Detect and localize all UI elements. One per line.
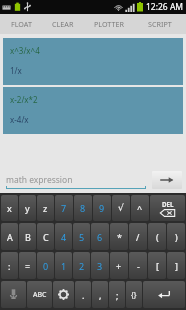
- staticText: /: [136, 231, 140, 243]
- staticText: ,: [99, 289, 102, 301]
- button[interactable]: √: [112, 195, 130, 221]
- staticText: 3: [97, 260, 103, 272]
- button[interactable]: z: [37, 195, 54, 221]
- button[interactable]: C: [37, 223, 54, 250]
- staticText: A: [7, 231, 13, 243]
- staticText: 0: [43, 260, 49, 272]
- button[interactable]: Voice input: [1, 281, 26, 308]
- staticText: y: [25, 202, 30, 214]
- staticText: √: [118, 203, 124, 213]
- button[interactable]: -: [129, 252, 147, 279]
- staticText: 7: [61, 202, 67, 214]
- button[interactable]: [: [148, 252, 166, 279]
- staticText: 5: [79, 231, 85, 243]
- staticText: DEL: [162, 200, 174, 208]
- button[interactable]: *: [110, 223, 128, 250]
- button[interactable]: Submit expression: [152, 171, 182, 189]
- staticText: .: [82, 289, 85, 301]
- button[interactable]: :: [1, 252, 18, 279]
- button[interactable]: x-2/x*2: [3, 87, 183, 134]
- staticText: :: [8, 260, 11, 272]
- staticText: ABC: [33, 290, 47, 300]
- staticText: (: [156, 231, 159, 243]
- staticText: [: [156, 260, 159, 272]
- staticText: x-4/x: [10, 114, 29, 125]
- button[interactable]: x^3/x^4: [3, 38, 183, 85]
- staticText: 1/x: [10, 65, 22, 76]
- button[interactable]: y: [19, 195, 36, 221]
- button[interactable]: B: [19, 223, 36, 250]
- button[interactable]: (: [148, 223, 166, 250]
- button[interactable]: /: [129, 223, 147, 250]
- staticText: 12:26 AM: [146, 1, 184, 13]
- button[interactable]: 9: [93, 195, 111, 221]
- button[interactable]: 2: [73, 252, 90, 279]
- button[interactable]: 3: [91, 252, 109, 279]
- button[interactable]: x: [1, 195, 18, 221]
- staticText: 2: [79, 260, 85, 272]
- staticText: 4: [61, 231, 67, 243]
- staticText: ): [175, 231, 178, 243]
- staticText: x: [7, 202, 12, 214]
- button[interactable]: 4: [55, 223, 72, 250]
- staticText: B: [25, 231, 31, 243]
- staticText: C: [43, 231, 49, 243]
- button[interactable]: ]: [167, 252, 185, 279]
- button[interactable]: ,: [92, 281, 108, 308]
- button[interactable]: Keyboard settings: [53, 281, 74, 308]
- button[interactable]: {}: [126, 281, 142, 308]
- button[interactable]: CLEAR: [42, 14, 84, 34]
- button[interactable]: 8: [74, 195, 92, 221]
- button[interactable]: A: [1, 223, 18, 250]
- staticText: ;: [116, 289, 119, 301]
- staticText: CLEAR: [52, 19, 74, 29]
- staticText: ^: [137, 202, 143, 214]
- button[interactable]: ): [167, 223, 185, 250]
- staticText: 8: [80, 202, 86, 214]
- staticText: ]: [175, 260, 178, 272]
- staticText: *: [117, 231, 122, 243]
- button[interactable]: +: [110, 252, 128, 279]
- button[interactable]: PLOTTER: [84, 14, 134, 34]
- staticText: 1: [61, 260, 67, 272]
- button[interactable]: 5: [73, 223, 90, 250]
- staticText: x-2/x*2: [10, 94, 38, 105]
- button[interactable]: ^: [131, 195, 149, 221]
- staticText: math expression: [6, 174, 73, 186]
- button[interactable]: =: [19, 252, 36, 279]
- button[interactable]: 7: [55, 195, 73, 221]
- button[interactable]: .: [75, 281, 91, 308]
- button[interactable]: Enter: [143, 281, 185, 308]
- button[interactable]: SCRIPT: [134, 14, 186, 34]
- button[interactable]: Delete: [150, 195, 185, 221]
- button[interactable]: 1: [55, 252, 72, 279]
- staticText: +: [116, 260, 122, 272]
- staticText: FLOAT: [11, 19, 32, 29]
- staticText: {}: [131, 290, 137, 300]
- button[interactable]: ;: [109, 281, 125, 308]
- button[interactable]: FLOAT: [0, 14, 42, 34]
- button[interactable]: ABC: [27, 281, 52, 308]
- staticText: 6: [97, 231, 103, 243]
- staticText: x^3/x^4: [10, 45, 40, 56]
- staticText: PLOTTER: [94, 19, 124, 29]
- staticText: -: [137, 260, 140, 272]
- button[interactable]: 6: [91, 223, 109, 250]
- button[interactable]: math expression: [6, 171, 146, 189]
- staticText: 9: [99, 202, 105, 214]
- button[interactable]: 0: [37, 252, 54, 279]
- staticText: z: [43, 202, 48, 214]
- staticText: SCRIPT: [148, 19, 172, 29]
- staticText: =: [25, 260, 31, 272]
